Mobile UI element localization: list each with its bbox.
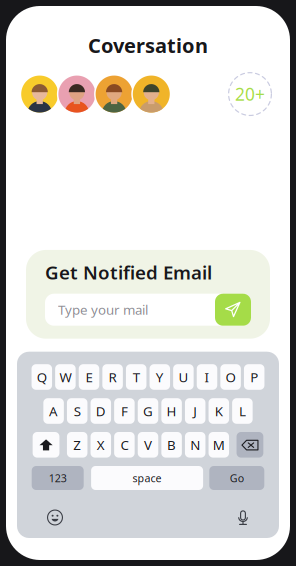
button[interactable]: M <box>209 432 229 458</box>
staticText: R <box>109 368 117 386</box>
button[interactable]: Go <box>209 466 264 490</box>
button[interactable]: I <box>197 364 217 390</box>
staticText: J <box>193 402 197 420</box>
button[interactable]: space <box>91 466 203 490</box>
staticText: 20+ <box>235 83 265 106</box>
staticText: F <box>121 402 128 420</box>
staticText: Go <box>230 471 244 485</box>
button[interactable]: C <box>114 432 135 458</box>
staticText: Get Notified Email <box>45 260 212 285</box>
button[interactable]: G <box>138 398 158 424</box>
staticText: 123 <box>49 471 67 485</box>
button[interactable]: W <box>55 364 76 390</box>
staticText: space <box>133 471 162 485</box>
button[interactable]: R <box>102 364 123 390</box>
button[interactable]: Emoji <box>47 509 63 525</box>
staticText: G <box>143 402 153 420</box>
button[interactable]: E <box>79 364 99 390</box>
staticText: W <box>59 368 71 386</box>
button[interactable]: Send <box>215 294 251 326</box>
staticText: B <box>167 436 176 454</box>
staticText: V <box>144 436 152 454</box>
staticText: X <box>97 436 105 454</box>
button[interactable]: K <box>208 398 229 424</box>
button[interactable]: Z <box>67 432 87 458</box>
staticText: H <box>167 402 177 420</box>
staticText: K <box>215 402 223 420</box>
button[interactable]: O <box>220 364 241 390</box>
button[interactable]: Shift <box>33 432 59 458</box>
staticText: Z <box>73 436 81 454</box>
staticText: Q <box>37 368 47 386</box>
button[interactable]: Dictation <box>237 509 249 526</box>
staticText: D <box>96 402 106 420</box>
staticText: C <box>120 436 128 454</box>
button[interactable]: J <box>185 398 205 424</box>
button[interactable]: A <box>43 398 64 424</box>
button[interactable]: 123 <box>32 466 84 490</box>
staticText: S <box>74 402 81 420</box>
button[interactable]: Q <box>31 364 52 390</box>
button[interactable]: B <box>161 432 182 458</box>
button[interactable]: U <box>173 364 194 390</box>
button[interactable]: V <box>138 432 158 458</box>
button[interactable]: Y <box>150 364 170 390</box>
staticText: O <box>226 368 236 386</box>
button[interactable]: P <box>244 364 264 390</box>
staticText: A <box>49 402 58 420</box>
staticText: N <box>190 436 200 454</box>
staticText: U <box>178 368 188 386</box>
button[interactable]: N <box>185 432 205 458</box>
button[interactable]: D <box>90 398 111 424</box>
staticText: Y <box>156 368 164 386</box>
button[interactable]: F <box>114 398 135 424</box>
button[interactable]: X <box>91 432 111 458</box>
button[interactable]: T <box>126 364 146 390</box>
staticText: M <box>213 436 225 454</box>
staticText: Coversation <box>88 32 208 59</box>
button[interactable]: H <box>161 398 182 424</box>
button[interactable]: S <box>67 398 87 424</box>
staticText: Type your mail <box>58 301 148 318</box>
button[interactable]: Delete <box>236 432 263 458</box>
staticText: L <box>239 402 246 420</box>
staticText: E <box>85 368 92 386</box>
staticText: I <box>204 368 209 386</box>
button[interactable]: 20+ <box>228 72 272 116</box>
button[interactable]: L <box>232 398 253 424</box>
staticText: T <box>133 368 140 386</box>
staticText: P <box>250 368 258 386</box>
